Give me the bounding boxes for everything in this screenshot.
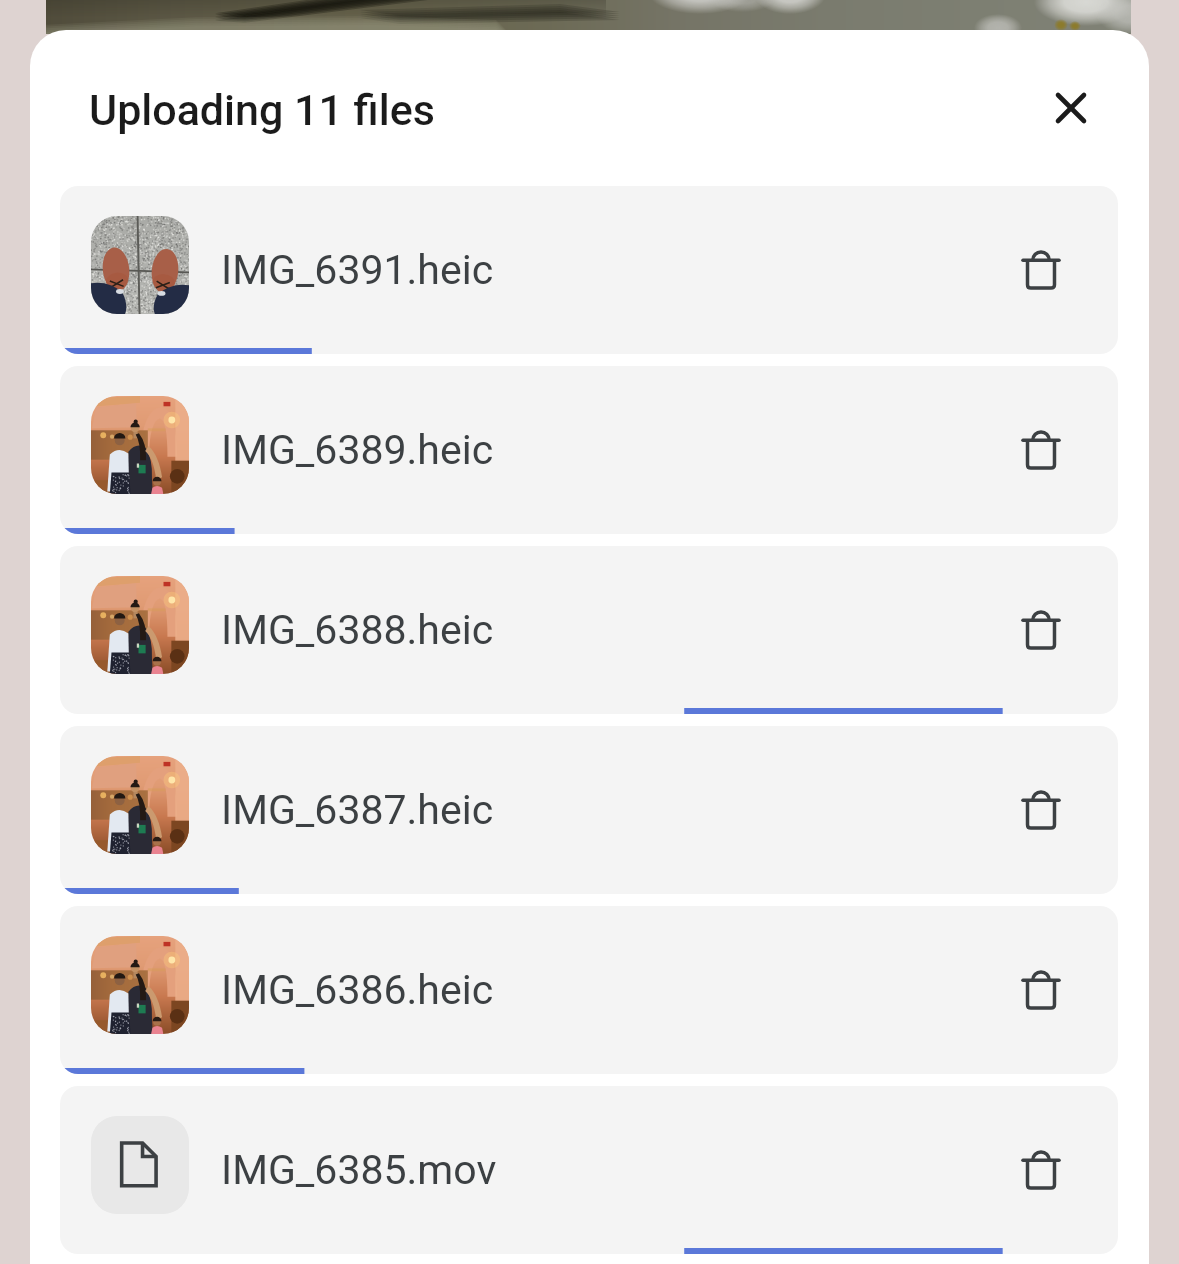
staticText: IMG_6391.heic (221, 246, 494, 294)
button[interactable]: Delete (997, 946, 1085, 1034)
button[interactable]: Delete (997, 1126, 1085, 1214)
button[interactable]: Delete (997, 766, 1085, 854)
button[interactable]: IMG_6385.mov (60, 1086, 1118, 1254)
button[interactable]: IMG_6389.heic (60, 366, 1118, 534)
button[interactable]: Delete (997, 406, 1085, 494)
button[interactable]: Close (1027, 64, 1115, 152)
button[interactable]: IMG_6388.heic (60, 546, 1118, 714)
staticText: IMG_6387.heic (221, 786, 494, 834)
button[interactable]: Delete (997, 586, 1085, 674)
button[interactable]: Delete (997, 226, 1085, 314)
button[interactable]: IMG_6386.heic (60, 906, 1118, 1074)
staticText: IMG_6388.heic (221, 606, 494, 654)
staticText: IMG_6389.heic (221, 426, 494, 474)
staticText: IMG_6386.heic (221, 966, 494, 1014)
button[interactable]: IMG_6391.heic (60, 186, 1118, 354)
button[interactable]: IMG_6387.heic (60, 726, 1118, 894)
staticText: IMG_6385.mov (221, 1146, 497, 1194)
staticText: Uploading 11 files (89, 85, 435, 135)
